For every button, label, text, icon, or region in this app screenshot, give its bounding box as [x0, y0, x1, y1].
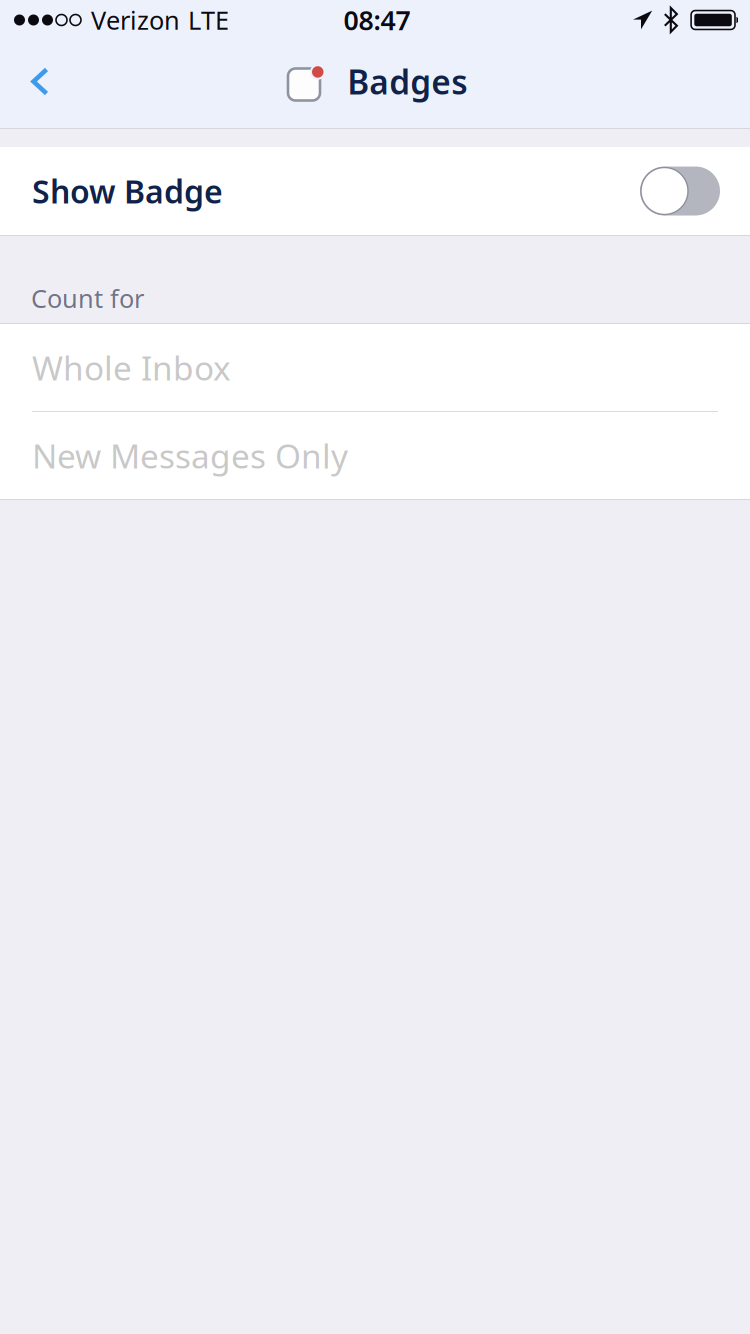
staticText: 08:47 — [343, 2, 410, 38]
staticText: Badges — [347, 59, 467, 104]
staticText: LTE — [188, 3, 229, 37]
staticText: Verizon — [91, 3, 180, 37]
staticText: New Messages Only — [32, 433, 348, 478]
button[interactable]: Back — [0, 40, 75, 128]
staticText: Count for — [31, 281, 144, 315]
staticText: Whole Inbox — [32, 345, 231, 390]
button[interactable]: New Messages Only — [0, 412, 750, 499]
staticText: Show Badge — [32, 170, 223, 212]
button[interactable]: Whole Inbox — [0, 324, 750, 411]
button[interactable]: Show Badge — [0, 147, 750, 235]
